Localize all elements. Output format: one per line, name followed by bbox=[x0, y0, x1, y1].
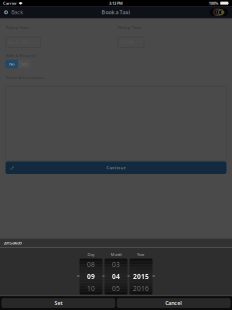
staticText: Cancel bbox=[165, 299, 182, 307]
staticText: Back bbox=[11, 9, 23, 16]
button[interactable]: Cancel bbox=[117, 298, 231, 308]
staticText: Pickup Date: bbox=[5, 25, 29, 30]
staticText: Wait & Return? bbox=[5, 53, 36, 58]
staticText: 08 bbox=[87, 260, 95, 269]
staticText: 100% bbox=[209, 0, 219, 6]
staticText: Year bbox=[137, 252, 145, 257]
staticText: Driver Instructions: bbox=[5, 75, 44, 80]
staticText: 09 bbox=[87, 272, 95, 281]
staticText: 04 bbox=[112, 272, 120, 281]
staticText: Carrier bbox=[3, 0, 17, 6]
staticText: 10 bbox=[87, 284, 95, 293]
staticText: 2015 bbox=[133, 272, 149, 281]
staticText: Day bbox=[87, 252, 94, 257]
staticText: 2015-04-09 bbox=[3, 240, 21, 246]
staticText: Set bbox=[54, 299, 62, 307]
button[interactable]: Continue bbox=[0, 161, 232, 174]
staticText: Yes bbox=[21, 61, 27, 67]
button[interactable]: Back bbox=[0, 6, 28, 18]
button[interactable]: Company logo bbox=[209, 8, 232, 16]
staticText: Month bbox=[110, 252, 121, 257]
staticText: 3:13 PM bbox=[109, 0, 123, 6]
button[interactable]: Set bbox=[1, 298, 115, 308]
staticText: Continue bbox=[106, 165, 125, 170]
staticText: Pickup Time: bbox=[118, 25, 142, 30]
staticText: No bbox=[9, 61, 14, 67]
button[interactable]: No bbox=[5, 60, 18, 68]
staticText: Book a Taxi bbox=[101, 9, 130, 16]
staticText: 2016 bbox=[133, 284, 149, 293]
staticText: 05 bbox=[112, 284, 120, 293]
button[interactable]: Yes bbox=[18, 60, 30, 68]
staticText: 03 bbox=[112, 260, 120, 269]
